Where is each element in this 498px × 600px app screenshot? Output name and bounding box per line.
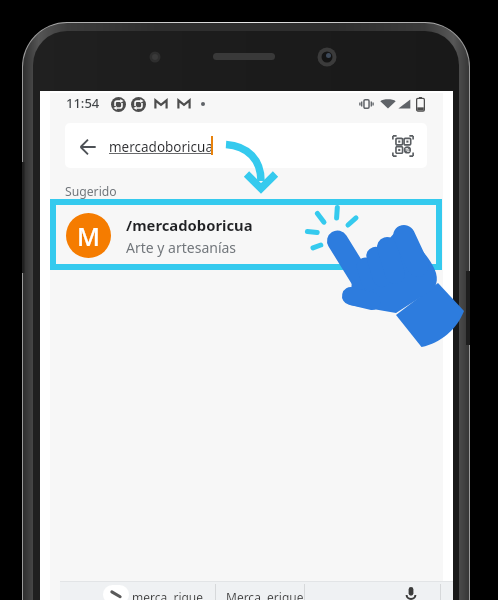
button[interactable]: M [50, 199, 442, 270]
button[interactable]: Back [72, 131, 104, 163]
staticText: M [77, 219, 100, 253]
button[interactable]: Scan QR code [386, 129, 420, 163]
staticText: Merca erique [226, 589, 304, 600]
staticText: /mercadoboricua [126, 215, 253, 235]
staticText: merca rique [132, 589, 204, 600]
staticText: Arte y artesanías [126, 238, 237, 257]
staticText: 11:54 [66, 94, 100, 112]
staticText: mercadoboricua [109, 138, 213, 156]
button[interactable]: Voice search [103, 585, 129, 600]
staticText: Sugerido [65, 183, 117, 200]
